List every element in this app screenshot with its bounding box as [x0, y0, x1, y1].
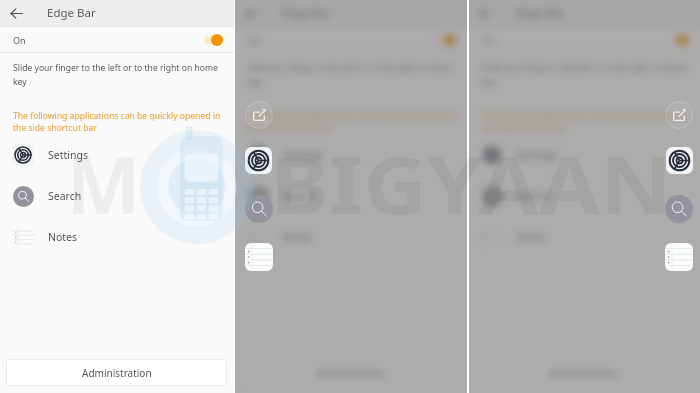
- button[interactable]: Administration: [475, 359, 693, 386]
- button[interactable]: Settings: [235, 134, 467, 175]
- staticText: Slide your finger to the left or to the …: [482, 62, 688, 88]
- staticText: Administration: [82, 366, 152, 380]
- staticText: The following applications can be quickl…: [248, 110, 460, 133]
- button[interactable]: Administration: [6, 359, 227, 386]
- staticText: BIGYAAN: [270, 130, 672, 238]
- button[interactable]: Settings: [469, 134, 700, 175]
- staticText: M: [66, 130, 141, 238]
- staticText: Notes: [283, 230, 313, 244]
- button[interactable]: Toggle Edge Bar: [670, 34, 689, 46]
- button[interactable]: Toggle Edge Bar: [437, 34, 456, 46]
- button[interactable]: Search: [245, 195, 273, 223]
- button[interactable]: Settings: [245, 147, 272, 174]
- staticText: Settings: [48, 148, 88, 162]
- button[interactable]: Search: [0, 175, 234, 216]
- button[interactable]: Administration: [241, 359, 460, 386]
- button[interactable]: On: [0, 27, 234, 52]
- staticText: Notes: [517, 230, 547, 244]
- button[interactable]: Notes: [665, 243, 693, 271]
- staticText: Edge Bar: [47, 5, 96, 21]
- button[interactable]: Settings: [0, 134, 234, 175]
- button[interactable]: Back: [469, 0, 501, 26]
- staticText: Edge Bar: [282, 5, 331, 21]
- button[interactable]: Compose note: [665, 101, 693, 129]
- button[interactable]: Compose note: [245, 101, 273, 129]
- button[interactable]: Notes: [235, 216, 467, 257]
- button[interactable]: Notes: [245, 243, 273, 271]
- staticText: On: [13, 34, 26, 46]
- staticText: Settings: [517, 148, 557, 162]
- staticText: The following applications can be quickl…: [13, 110, 227, 133]
- button[interactable]: Back: [235, 0, 267, 26]
- staticText: Slide your finger to the left or to the …: [13, 62, 222, 88]
- button[interactable]: Search: [469, 175, 700, 216]
- button[interactable]: Search: [665, 195, 693, 223]
- staticText: Notes: [48, 230, 78, 244]
- button[interactable]: Toggle Edge Bar: [204, 34, 223, 46]
- staticText: Search: [48, 189, 82, 203]
- staticText: Search: [283, 189, 317, 203]
- staticText: Edge Bar: [516, 5, 565, 21]
- button[interactable]: Notes: [469, 216, 700, 257]
- button[interactable]: On: [469, 27, 700, 52]
- staticText: The following applications can be quickl…: [482, 110, 693, 133]
- button[interactable]: Search: [235, 175, 467, 216]
- staticText: Slide your finger to the left or to the …: [248, 62, 455, 88]
- staticText: Settings: [283, 148, 323, 162]
- staticText: Administration: [316, 366, 386, 380]
- button[interactable]: Settings: [666, 147, 693, 174]
- button[interactable]: Back: [0, 0, 32, 26]
- button[interactable]: Notes: [0, 216, 234, 257]
- staticText: Administration: [549, 366, 619, 380]
- staticText: Search: [517, 189, 551, 203]
- button[interactable]: On: [235, 27, 467, 52]
